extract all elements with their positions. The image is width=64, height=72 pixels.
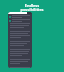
button[interactable]: Avatar [9, 15, 31, 18]
button[interactable]: Avatar [9, 19, 31, 22]
staticText: Endless possibilities [20, 3, 44, 12]
